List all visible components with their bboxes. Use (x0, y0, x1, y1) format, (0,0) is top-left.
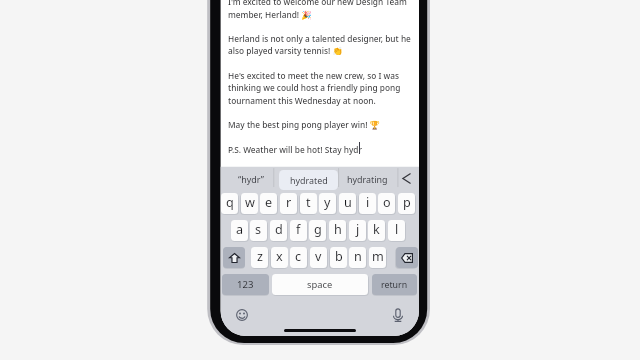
button[interactable]: q (221, 193, 238, 214)
button[interactable]: o (378, 193, 395, 214)
staticText: hydrated (290, 174, 328, 186)
staticText: thinking we could host a friendly ping p… (228, 82, 401, 93)
staticText: 123 (237, 278, 254, 291)
staticText: I'm excited to welcome our new Design Te… (228, 0, 407, 7)
button[interactable]: v (310, 247, 327, 268)
staticText: space (307, 278, 333, 291)
button[interactable]: h (329, 220, 346, 241)
staticText: y (324, 194, 331, 211)
staticText: j (356, 221, 360, 238)
button[interactable]: x (271, 247, 288, 268)
button[interactable]: f (290, 220, 307, 241)
staticText: “hydr” (238, 173, 264, 185)
staticText: l (395, 221, 399, 238)
staticText: n (354, 248, 362, 265)
staticText: tournament this Wednesday at noon. (228, 95, 376, 106)
button[interactable]: i (359, 193, 376, 214)
staticText: w (245, 194, 255, 211)
staticText: P.S. Weather will be hot! Stay hydr (228, 144, 362, 155)
button[interactable]: a (231, 220, 248, 241)
button[interactable]: w (241, 193, 258, 214)
staticText: May the best ping pong player win! 🏆 (228, 119, 380, 130)
button[interactable]: p (398, 193, 415, 214)
button[interactable]: hydrating (339, 169, 395, 189)
staticText: e (265, 194, 273, 211)
staticText: b (335, 248, 343, 265)
staticText: He's excited to meet the new crew, so I … (228, 70, 399, 81)
button[interactable]: m (369, 247, 386, 268)
staticText: return (381, 279, 408, 291)
staticText: f (296, 221, 301, 238)
staticText: h (334, 221, 342, 238)
staticText: u (344, 194, 352, 211)
staticText: also played varsity tennis! 👏 (228, 45, 343, 56)
staticText: k (373, 221, 380, 238)
staticText: c (295, 248, 302, 265)
button[interactable]: hydrated (279, 170, 338, 190)
staticText: s (255, 221, 262, 238)
button[interactable]: j (349, 220, 366, 241)
button[interactable]: Hide suggestions (396, 167, 416, 189)
staticText: i (366, 194, 370, 211)
button[interactable]: s (250, 220, 267, 241)
staticText: q (226, 194, 234, 211)
button[interactable]: r (280, 193, 297, 214)
button[interactable]: z (251, 247, 268, 268)
button[interactable]: e (260, 193, 277, 214)
button[interactable]: y (319, 193, 336, 214)
button[interactable]: Backspace (396, 247, 418, 268)
button[interactable]: b (330, 247, 347, 268)
button[interactable]: c (290, 247, 307, 268)
staticText: Herland is not only a talented designer,… (228, 33, 411, 44)
button[interactable]: Emoji keyboard (233, 306, 251, 324)
button[interactable]: return (372, 274, 417, 295)
button[interactable]: space (272, 274, 368, 295)
staticText: o (383, 194, 391, 211)
staticText: m (372, 248, 384, 265)
staticText: d (275, 221, 283, 238)
button[interactable]: n (349, 247, 366, 268)
staticText: r (286, 194, 292, 211)
button[interactable]: g (309, 220, 326, 241)
staticText: g (314, 221, 322, 238)
button[interactable]: 123 (222, 274, 269, 295)
button[interactable]: d (270, 220, 287, 241)
button[interactable]: t (300, 193, 317, 214)
staticText: hydrating (347, 173, 388, 185)
staticText: p (403, 194, 411, 211)
staticText: member, Herland! 🎉 (228, 9, 312, 20)
button[interactable]: “hydr” (222, 169, 279, 189)
button[interactable]: u (339, 193, 356, 214)
button[interactable]: k (368, 220, 385, 241)
staticText: x (276, 248, 283, 265)
button[interactable]: Dictation (389, 306, 407, 324)
staticText: t (306, 194, 311, 211)
staticText: a (236, 221, 244, 238)
staticText: v (315, 248, 322, 265)
button[interactable]: Shift (223, 247, 245, 268)
button[interactable]: l (388, 220, 405, 241)
staticText: z (257, 248, 263, 265)
